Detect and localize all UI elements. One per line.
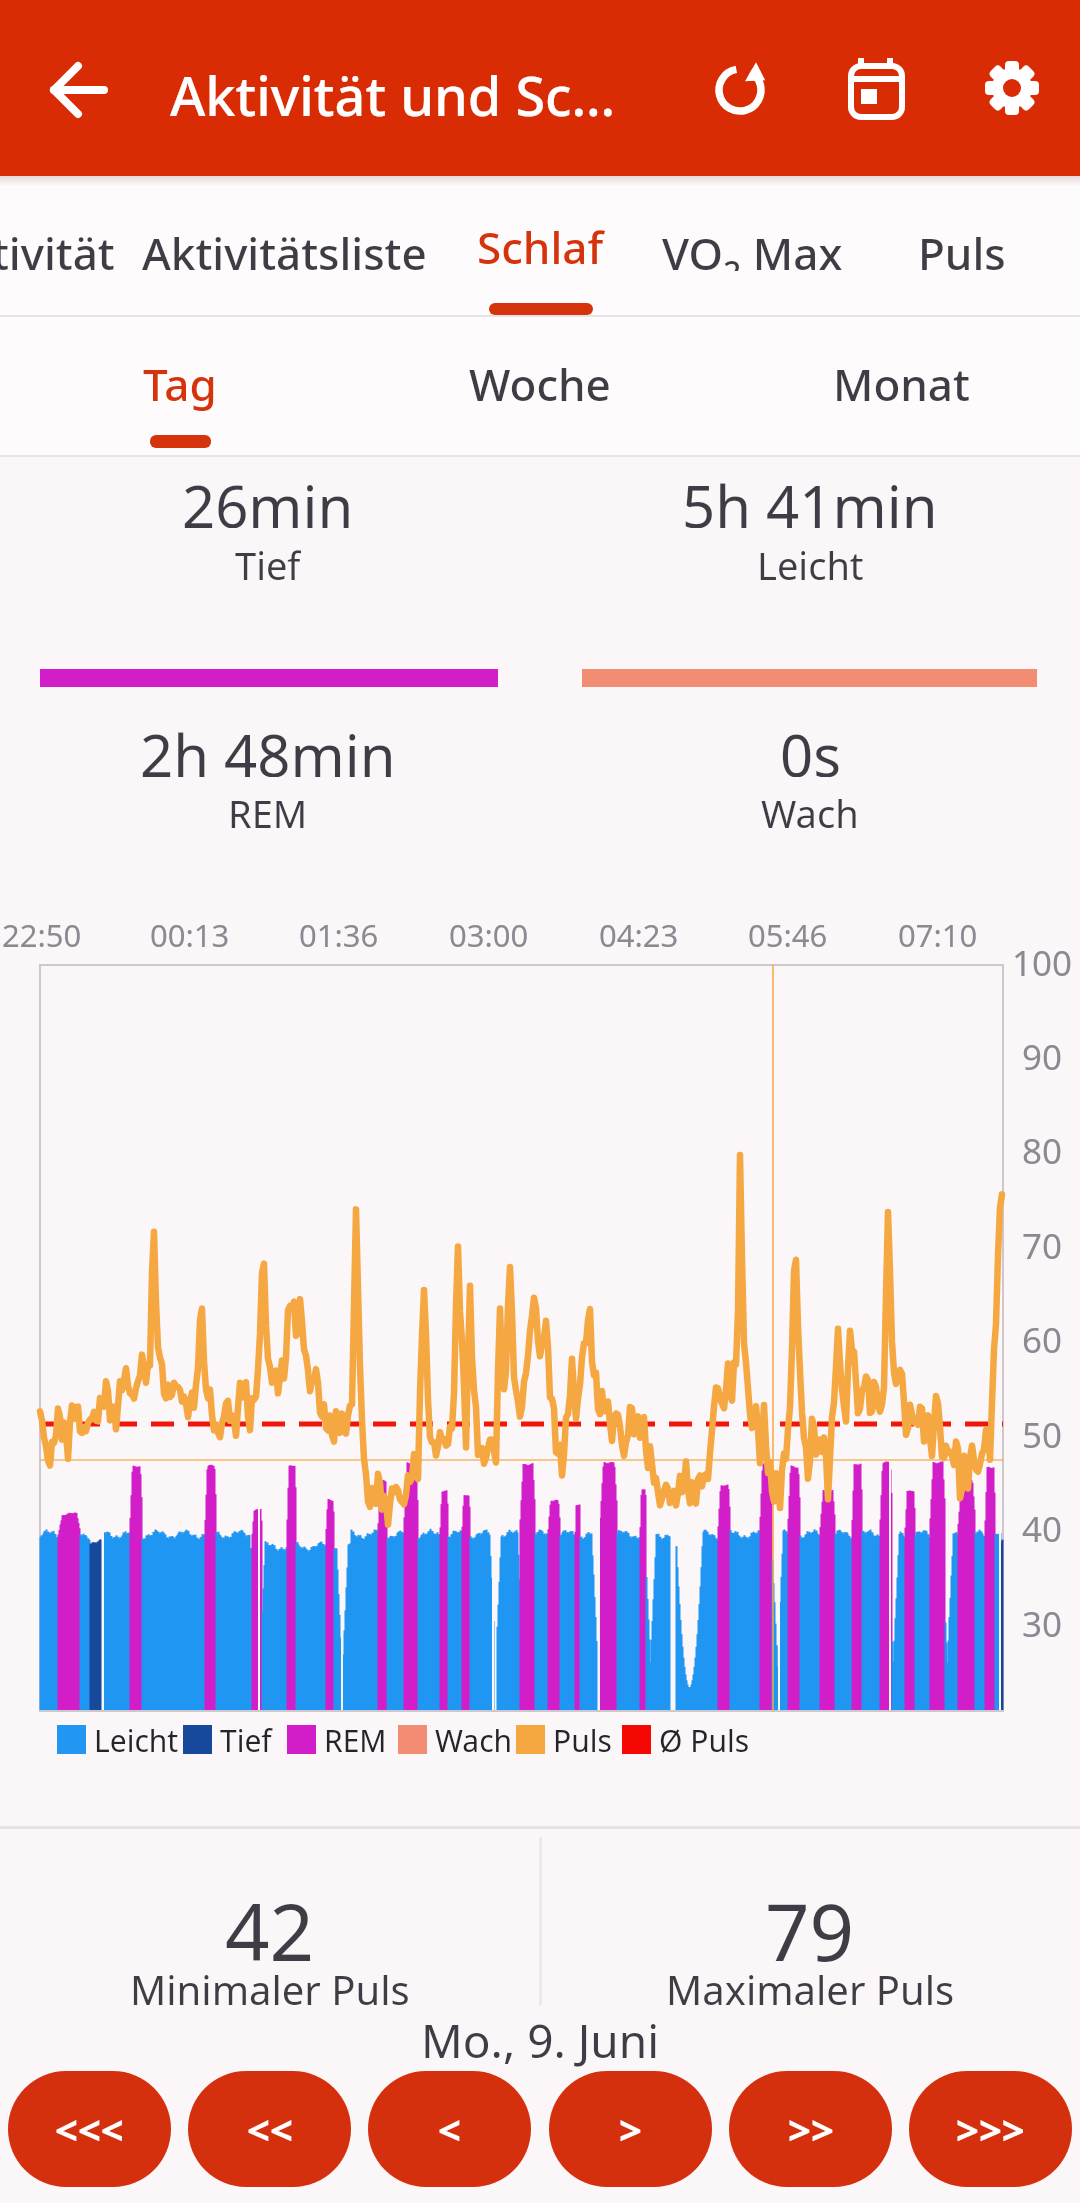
button[interactable] [840,48,910,128]
staticText: 42 [225,1878,315,1964]
staticText: 60 [1022,1316,1063,1360]
button[interactable]: VO2 Max [642,223,862,271]
button[interactable]: tivität [0,223,115,271]
staticText: Tief [235,539,301,587]
staticText: Puls [918,223,1006,271]
staticText: >>> [956,2102,1025,2156]
staticText: 26min [182,466,354,528]
staticText: Leicht [757,539,864,587]
button[interactable] [28,40,128,140]
staticText: 50 [1022,1411,1063,1455]
button[interactable] [977,53,1047,123]
staticText: 90 [1022,1033,1063,1077]
button[interactable]: < [368,2071,531,2187]
button[interactable]: Schlaf [430,217,650,277]
staticText: 5h 41min [682,466,938,528]
staticText: VO2 Max [662,223,843,271]
staticText: Minimaler Puls [130,1962,410,2010]
staticText: << [247,2102,293,2156]
staticText: Tag [143,354,217,414]
staticText: Tief [220,1720,272,1761]
button[interactable]: > [549,2071,712,2187]
button[interactable]: >> [729,2071,892,2187]
staticText: 30 [1022,1600,1063,1644]
staticText: 05:46 [748,914,828,956]
staticText: <<< [55,2102,124,2156]
staticText: 80 [1022,1127,1063,1171]
staticText: Mo., 9. Juni [421,2009,660,2071]
staticText: Schlaf [477,217,604,277]
staticText: 07:10 [898,914,978,956]
staticText: Woche [469,354,611,414]
button[interactable]: << [188,2071,351,2187]
button[interactable]: <<< [8,2071,171,2187]
button[interactable]: Monat [821,354,981,414]
staticText: 03:00 [449,914,529,956]
staticText: 100 [1012,939,1073,983]
button[interactable]: >>> [909,2071,1072,2187]
staticText: Puls [553,1720,612,1761]
staticText: REM [324,1720,387,1761]
staticText: Wach [435,1720,513,1761]
staticText: 0s [780,715,841,777]
staticText: Aktivitätsliste [142,223,427,271]
staticText: > [619,2102,642,2156]
staticText: 40 [1022,1505,1063,1549]
staticText: 22:50 [2,914,82,956]
staticText: 01:36 [299,914,379,956]
button[interactable] [705,55,775,125]
staticText: 79 [765,1878,855,1964]
button[interactable]: Tag [100,354,260,414]
staticText: tivität [0,223,115,271]
staticText: 2h 48min [140,715,396,777]
staticText: Ø Puls [659,1720,750,1761]
staticText: Maximaler Puls [666,1962,955,2010]
staticText: >> [788,2102,834,2156]
staticText: 70 [1022,1222,1063,1266]
staticText: Monat [833,354,970,414]
staticText: REM [228,787,308,835]
staticText: 00:13 [150,914,230,956]
staticText: Leicht [94,1720,179,1761]
button[interactable]: Woche [460,354,620,414]
staticText: Aktivität und Sc… [170,58,616,132]
staticText: < [438,2102,461,2156]
staticText: Wach [761,787,859,835]
staticText: 04:23 [599,914,679,956]
